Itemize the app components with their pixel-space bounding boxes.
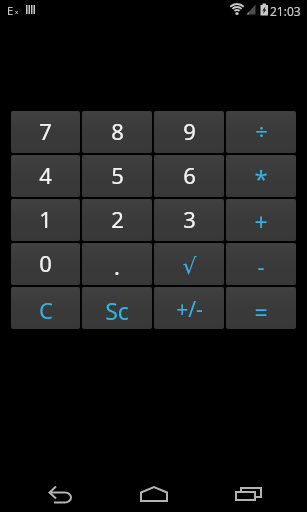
button[interactable]: 2	[82, 199, 152, 241]
staticText: -	[257, 251, 265, 281]
button[interactable]: +	[226, 199, 296, 241]
button[interactable]: 0	[11, 243, 80, 285]
staticText: 6	[183, 160, 196, 190]
staticText: +/-	[176, 295, 203, 324]
staticText: 21:03	[270, 3, 301, 19]
staticText: 2	[111, 204, 124, 234]
button[interactable]	[119, 470, 189, 512]
staticText: 9	[183, 116, 196, 146]
staticText: E	[7, 3, 14, 18]
staticText: 5	[111, 160, 124, 190]
button[interactable]: 3	[154, 199, 224, 241]
button[interactable]: 5	[82, 155, 152, 197]
button[interactable]: -	[226, 243, 296, 285]
button[interactable]: ÷	[226, 111, 296, 153]
button[interactable]: Sc	[82, 287, 152, 329]
button[interactable]: *	[226, 155, 296, 197]
button[interactable]: =	[226, 287, 296, 329]
staticText: x	[15, 8, 19, 16]
button[interactable]: 1	[11, 199, 80, 241]
button[interactable]	[213, 470, 283, 512]
staticText: √	[182, 254, 197, 280]
button[interactable]: +/-	[154, 287, 224, 329]
staticText: C	[39, 295, 53, 325]
button[interactable]	[25, 470, 95, 512]
staticText: 8	[111, 116, 124, 146]
button[interactable]: 4	[11, 155, 80, 197]
staticText: ÷	[255, 116, 268, 146]
staticText: 1	[39, 204, 52, 234]
staticText: Sc	[105, 295, 129, 326]
button[interactable]: √	[154, 243, 224, 285]
staticText: 3	[183, 204, 196, 234]
button[interactable]: 6	[154, 155, 224, 197]
button[interactable]: 9	[154, 111, 224, 153]
staticText: =	[254, 296, 268, 327]
staticText: 7	[39, 116, 52, 146]
staticText: 0	[39, 248, 52, 278]
button[interactable]: 8	[82, 111, 152, 153]
staticText: 4	[39, 160, 52, 190]
button[interactable]: .	[82, 243, 152, 285]
button[interactable]: C	[11, 287, 80, 329]
button[interactable]: 7	[11, 111, 80, 153]
staticText: *	[254, 162, 268, 195]
staticText: +	[254, 206, 268, 237]
staticText: .	[114, 251, 120, 281]
